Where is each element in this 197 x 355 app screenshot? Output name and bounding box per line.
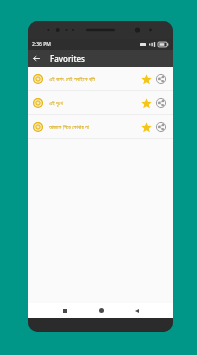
staticText: এই জগৎ নেই সবাইকে বলি <box>49 75 96 82</box>
staticText: আজকে গিয়ে কোথায় না <box>49 123 89 130</box>
staticText: Favorites <box>50 53 85 64</box>
button[interactable]: Share <box>154 72 168 86</box>
button[interactable]: Favorite <box>139 72 153 86</box>
button[interactable]: Share <box>154 96 168 110</box>
staticText: এই দুঃখ <box>49 99 63 106</box>
button[interactable]: Back <box>126 303 148 318</box>
button[interactable]: Favorite <box>139 96 153 110</box>
button[interactable]: Home <box>90 303 112 318</box>
button[interactable]: Recent apps <box>54 303 76 318</box>
button[interactable]: Back <box>28 50 45 67</box>
button[interactable]: Share <box>154 120 168 134</box>
button[interactable]: আজকে গিয়ে কোথায় না <box>28 115 173 138</box>
button[interactable]: Favorite <box>139 120 153 134</box>
button[interactable]: এই জগৎ নেই সবাইকে বলি <box>28 67 173 90</box>
button[interactable]: এই দুঃখ <box>28 91 173 114</box>
staticText: 2:36 PM <box>32 41 51 48</box>
